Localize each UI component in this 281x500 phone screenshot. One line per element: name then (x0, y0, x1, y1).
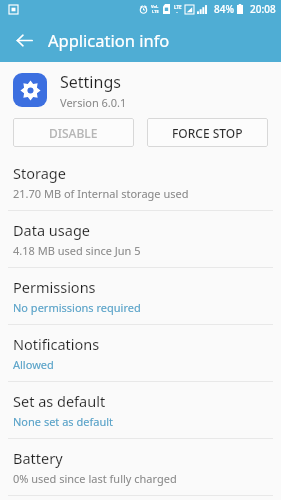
staticText: 84% (214, 2, 234, 16)
staticText: Settings (60, 71, 121, 93)
staticText: DISABLE (49, 125, 98, 141)
staticText: VoLTE (151, 4, 160, 9)
button[interactable]: FORCE STOP (147, 118, 268, 147)
staticText: 4.18 MB used since Jun 5 (13, 243, 141, 258)
staticText: 0% used since last fully charged (13, 471, 177, 486)
button[interactable]: Set as default (0, 382, 281, 438)
staticText: Set as default (13, 391, 106, 411)
button[interactable]: Data usage (0, 211, 281, 267)
button[interactable]: Storage (0, 154, 281, 210)
staticText: 20:08 (250, 2, 276, 16)
staticText: No permissions required (13, 300, 141, 315)
button[interactable]: Permissions (0, 268, 281, 324)
staticText: None set as default (13, 414, 114, 429)
button[interactable]: Battery (0, 439, 281, 495)
staticText: Notifications (13, 334, 100, 354)
staticText: 21.70 MB of Internal storage used (13, 186, 189, 201)
button[interactable]: Back (6, 22, 42, 58)
staticText: LTE (174, 4, 182, 10)
staticText: ·· (176, 10, 179, 14)
staticText: Data usage (13, 220, 90, 240)
staticText: FORCE STOP (172, 125, 243, 141)
staticText: Application info (48, 29, 170, 51)
staticText: Version 6.0.1 (60, 95, 127, 110)
button[interactable]: Notifications (0, 325, 281, 381)
staticText: LTE (152, 9, 159, 14)
staticText: Storage (13, 163, 66, 183)
staticText: Allowed (13, 357, 54, 372)
button[interactable]: DISABLE (13, 118, 134, 147)
staticText: Battery (13, 448, 63, 468)
staticText: Permissions (13, 277, 96, 297)
